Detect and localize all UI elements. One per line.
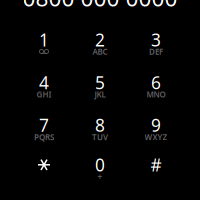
button[interactable]: 5 (72, 65, 128, 107)
button[interactable]: 0 (72, 148, 128, 190)
staticText: 9 (151, 114, 161, 137)
staticText: DEF (149, 46, 163, 57)
staticText: 8 (95, 114, 105, 137)
staticText: 0800 000 0000 (22, 0, 177, 13)
staticText: ABC (92, 46, 107, 57)
button[interactable]: 3 (128, 23, 184, 65)
button[interactable]: Star (16, 148, 72, 190)
staticText: 0 (95, 153, 105, 176)
button[interactable]: 8 (72, 108, 128, 150)
staticText: + (97, 171, 102, 182)
staticText: 7 (39, 114, 49, 137)
staticText: 6 (151, 71, 161, 94)
button[interactable]: 6 (128, 65, 184, 107)
staticText: 2 (95, 28, 105, 51)
staticText: PQRS (34, 132, 54, 142)
staticText: WXYZ (144, 132, 167, 142)
button[interactable]: 7 (16, 108, 72, 150)
staticText: 4 (39, 71, 49, 94)
button[interactable]: 2 (72, 23, 128, 65)
button[interactable]: 4 (16, 65, 72, 107)
staticText: TUV (92, 132, 108, 142)
staticText: # (150, 153, 161, 176)
button[interactable]: # (128, 148, 184, 190)
staticText: JKL (94, 89, 105, 100)
staticText: 5 (95, 71, 105, 94)
staticText: 1 (39, 28, 49, 51)
staticText: 3 (151, 28, 161, 51)
staticText: MNO (146, 89, 165, 100)
staticText: GHI (36, 89, 51, 100)
button[interactable]: 1 (16, 23, 72, 65)
button[interactable]: 9 (128, 108, 184, 150)
